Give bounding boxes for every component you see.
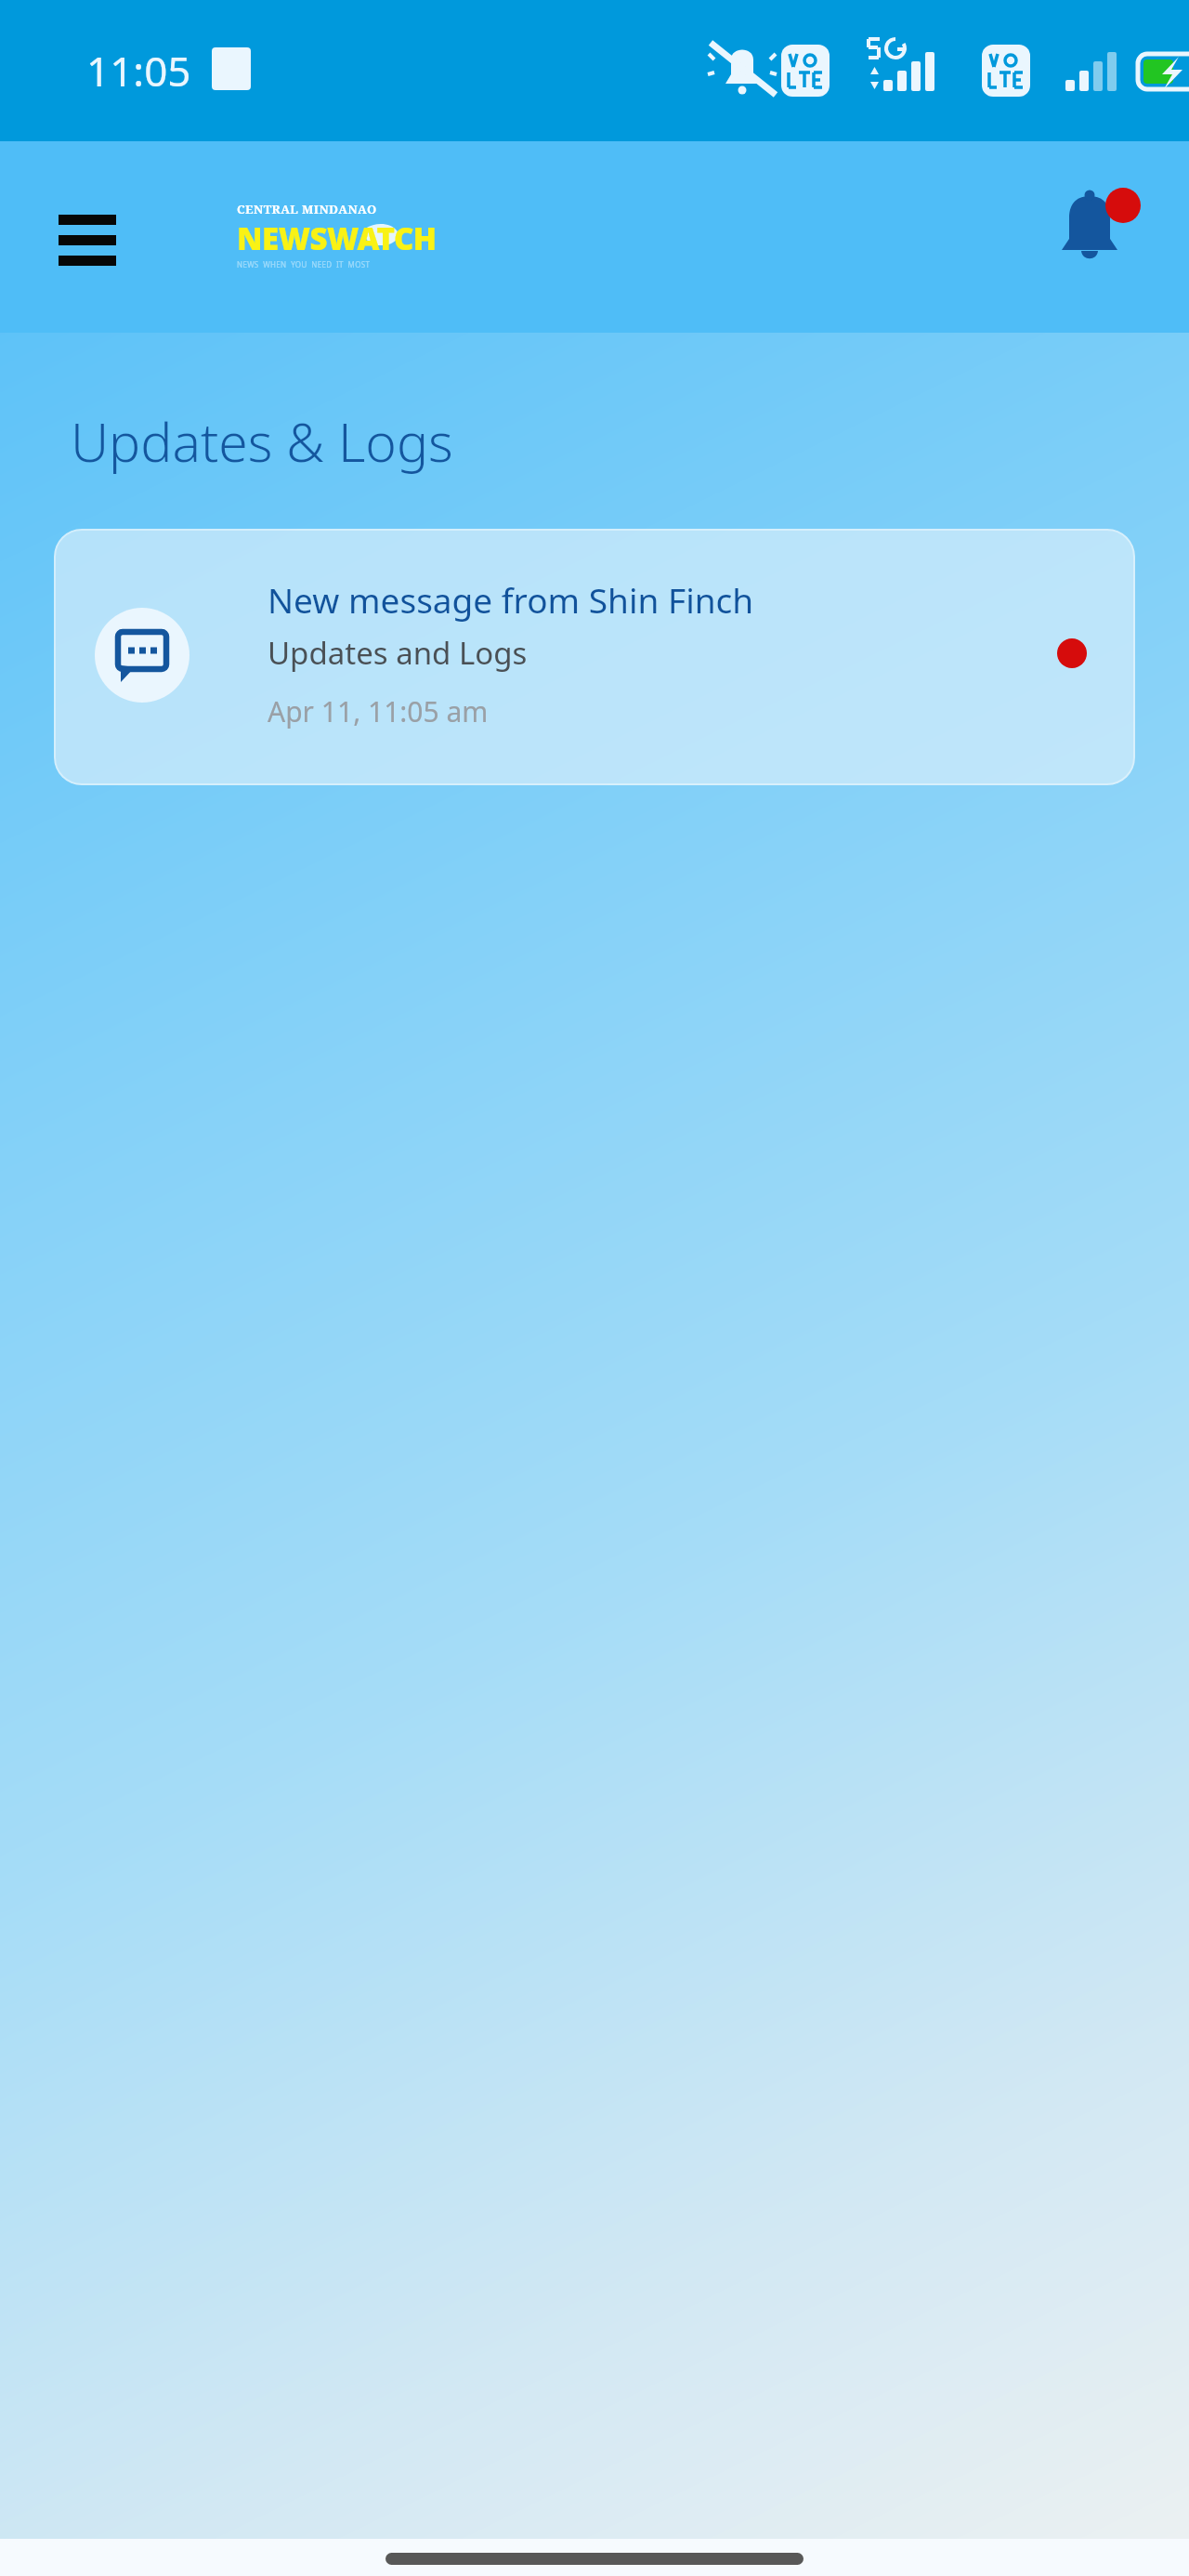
button[interactable]: Open navigation menu <box>43 192 132 282</box>
button[interactable]: New message from Shin Finch <box>54 529 1135 785</box>
staticText: 11:05 <box>86 43 191 99</box>
staticText: NEWSWATCH <box>237 217 437 259</box>
staticText: CENTRAL MINDANAO <box>237 201 377 217</box>
staticText: Updates and Logs <box>268 632 528 674</box>
button[interactable]: Notifications <box>1044 184 1146 286</box>
staticText: Apr 11, 11:05 am <box>268 692 489 730</box>
button[interactable]: Central Mindanao Newswatch home <box>237 201 437 269</box>
staticText: Updates & Logs <box>71 405 453 478</box>
staticText: New message from Shin Finch <box>268 576 754 623</box>
staticText: NEWS WHEN YOU NEED IT MOST <box>237 259 371 269</box>
